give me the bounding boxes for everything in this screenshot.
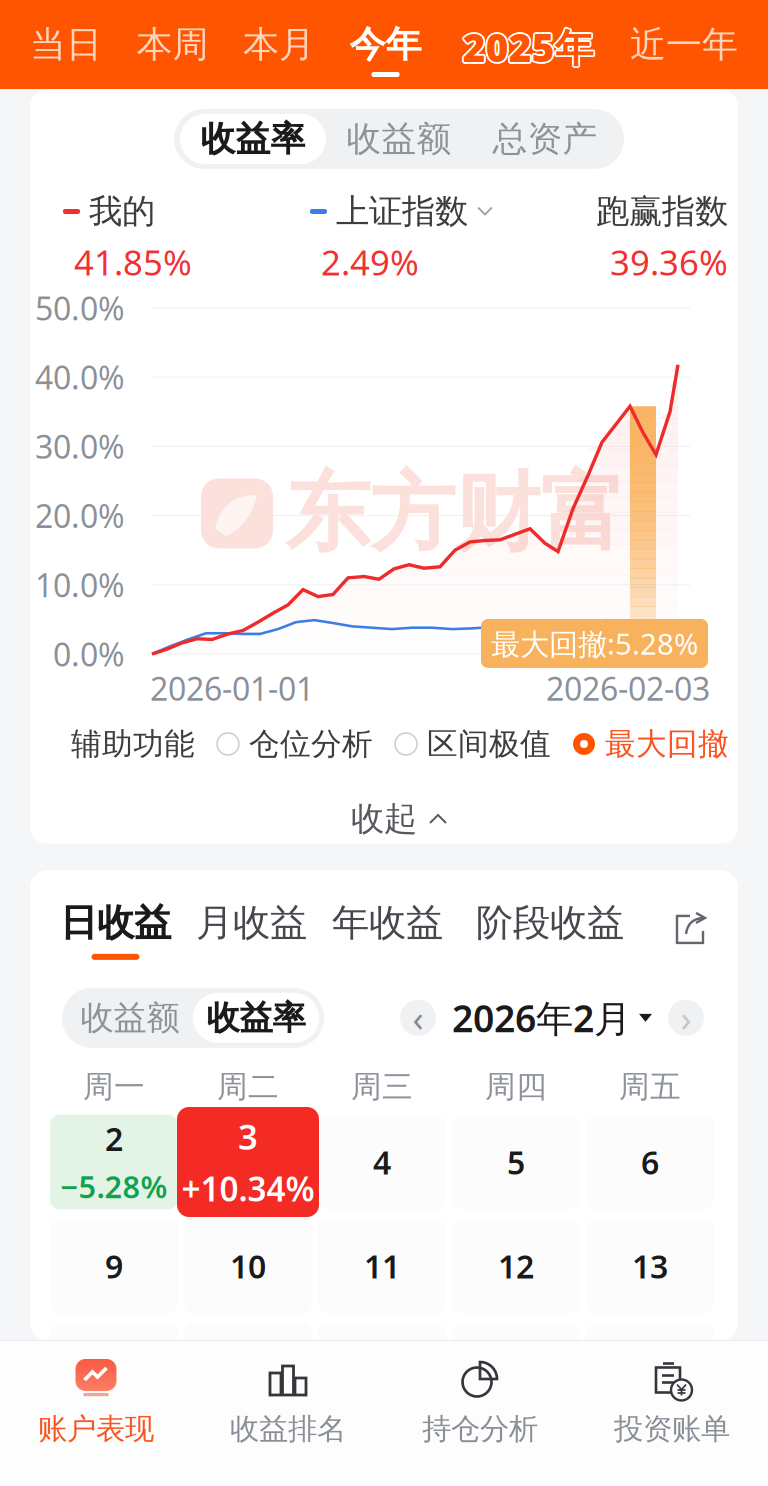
staticText: 收益额 xyxy=(346,118,451,160)
staticText: 12 xyxy=(498,1245,534,1287)
staticText: 0.0% xyxy=(53,633,125,675)
staticText: 30.0% xyxy=(35,425,125,468)
button[interactable]: 本周 xyxy=(136,0,208,89)
button[interactable]: 3 xyxy=(184,1114,312,1209)
staticText: ‹ xyxy=(412,994,423,1042)
staticText: 4 xyxy=(373,1141,391,1183)
button[interactable]: 日收益 xyxy=(60,900,196,960)
staticText: 2026年2月 xyxy=(452,993,631,1043)
button[interactable]: 本月 xyxy=(243,0,315,89)
staticText: 本月 xyxy=(243,22,315,67)
button[interactable]: Share xyxy=(672,910,710,950)
staticText: +10.34% xyxy=(185,1166,310,1207)
staticText: 10 xyxy=(230,1245,266,1287)
staticText: 20 xyxy=(632,1349,668,1391)
staticText: 总资产 xyxy=(492,118,597,160)
staticText: 6 xyxy=(641,1141,659,1183)
staticText: 月收益 xyxy=(196,900,307,946)
button[interactable]: 20 xyxy=(586,1322,714,1417)
button[interactable]: 19 xyxy=(452,1322,580,1417)
staticText: 2026-01-01 xyxy=(150,667,314,709)
staticText: 2025年 xyxy=(463,23,594,74)
button[interactable]: 收益率 xyxy=(180,114,326,164)
staticText: 今年 xyxy=(350,22,422,67)
button[interactable]: 持仓分析 xyxy=(384,1341,576,1486)
staticText: 39.36% xyxy=(610,239,728,285)
staticText: 本周 xyxy=(136,22,208,67)
staticText: 2025年 xyxy=(462,20,593,71)
staticText: 2025年 xyxy=(461,20,592,72)
staticText: 9 xyxy=(105,1245,123,1287)
button[interactable]: 收益率 xyxy=(193,993,319,1043)
staticText: 2025年 xyxy=(464,22,595,73)
button[interactable]: 18 xyxy=(318,1322,446,1417)
button[interactable]: 最大回撤 xyxy=(573,725,729,763)
button[interactable]: 12 xyxy=(452,1218,580,1313)
staticText: 收益额 xyxy=(80,997,179,1038)
button[interactable]: Previous month xyxy=(400,1000,436,1036)
button[interactable]: 区间极值 xyxy=(395,725,551,763)
button[interactable]: 账户表现 xyxy=(0,1341,192,1486)
button[interactable]: 收益额 xyxy=(67,993,193,1043)
staticText: 日收益 xyxy=(60,900,171,946)
staticText: 收益率 xyxy=(200,118,305,160)
staticText: 11 xyxy=(364,1245,400,1287)
staticText: 50.0% xyxy=(35,287,125,329)
button[interactable]: 2 xyxy=(50,1114,178,1209)
button[interactable]: 当日 xyxy=(30,0,102,89)
button[interactable]: 9 xyxy=(50,1218,178,1313)
button[interactable]: 月收益 xyxy=(196,900,332,960)
staticText: 5 xyxy=(507,1141,525,1183)
staticText: +10.34% xyxy=(181,1166,314,1211)
staticText: 2025年 xyxy=(463,21,594,73)
button[interactable]: 仓位分析 xyxy=(217,725,373,763)
button[interactable]: 3 xyxy=(177,1107,319,1217)
staticText: 持仓分析 xyxy=(422,1411,538,1447)
staticText: 2.49% xyxy=(321,239,419,285)
staticText: 2025年 xyxy=(463,20,594,71)
button[interactable]: 2025年 xyxy=(456,0,595,89)
staticText: 最大回撤 xyxy=(605,725,729,763)
staticText: 当日 xyxy=(30,22,102,67)
button[interactable]: 10 xyxy=(184,1218,312,1313)
staticText: 3 xyxy=(238,1113,258,1159)
button[interactable]: 今年 xyxy=(350,0,422,89)
button[interactable]: 16 xyxy=(50,1322,178,1417)
button[interactable]: 年收益 xyxy=(332,900,476,960)
staticText: 最大回撤:5.28% xyxy=(491,624,698,663)
button[interactable]: 收益排名 xyxy=(192,1341,384,1486)
staticText: › xyxy=(680,994,691,1042)
button[interactable]: 11 xyxy=(318,1218,446,1313)
staticText: 收益排名 xyxy=(230,1411,346,1447)
staticText: 辅助功能 xyxy=(71,725,195,763)
staticText: 收益率 xyxy=(206,997,305,1038)
staticText: 我的 xyxy=(89,191,155,232)
staticText: 2026-02-03 xyxy=(546,667,710,709)
button[interactable]: 近一年 xyxy=(630,0,738,89)
button[interactable]: 4 xyxy=(318,1114,446,1209)
staticText: 上证指数 xyxy=(336,191,468,232)
staticText: 10.0% xyxy=(35,564,125,606)
staticText: 2025年 xyxy=(464,20,595,71)
button[interactable]: 13 xyxy=(586,1218,714,1313)
staticText: 20.0% xyxy=(35,494,125,537)
button[interactable]: 阶段收益 xyxy=(476,900,626,960)
staticText: 2025年 xyxy=(464,20,595,72)
button[interactable]: 投资账单 xyxy=(576,1341,768,1486)
staticText: 阶段收益 xyxy=(476,900,624,946)
staticText: 周一 xyxy=(83,1068,145,1106)
button[interactable]: 17 xyxy=(184,1322,312,1417)
button[interactable]: 总资产 xyxy=(472,114,618,164)
staticText: 东方财富 xyxy=(285,461,625,566)
button[interactable]: Next month xyxy=(668,1000,704,1036)
staticText: 仓位分析 xyxy=(249,725,373,763)
button[interactable]: 收起 xyxy=(45,779,753,859)
button[interactable]: 收益额 xyxy=(326,114,472,164)
staticText: 近一年 xyxy=(630,22,738,67)
staticText: 周二 xyxy=(217,1068,279,1106)
button[interactable]: 6 xyxy=(586,1114,714,1209)
staticText: 2025年 xyxy=(464,23,595,74)
button[interactable]: 5 xyxy=(452,1114,580,1209)
